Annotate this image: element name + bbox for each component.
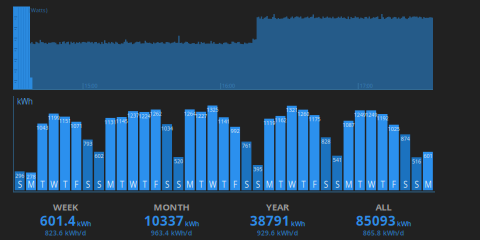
staticText: 1151 (59, 117, 71, 124)
staticText: F (312, 179, 316, 190)
staticText: 865.8 kWh/d (363, 229, 404, 237)
staticText: S (403, 179, 407, 190)
staticText: kWh (77, 219, 91, 228)
staticText: M (27, 179, 34, 190)
staticText: 1131 (104, 119, 116, 126)
staticText: 992 (231, 127, 240, 135)
staticText: 1087 (342, 121, 354, 128)
staticText: 1237 (127, 112, 139, 119)
staticText: M (107, 179, 114, 190)
staticText: F (233, 179, 237, 190)
staticText: 601 (423, 152, 432, 160)
staticText: 1325 (206, 106, 218, 113)
staticText: T (40, 179, 44, 190)
staticText: T (222, 179, 226, 190)
staticText: S (414, 179, 418, 190)
staticText: YEAR (266, 201, 289, 213)
staticText: kWh (397, 219, 411, 228)
staticText: M (424, 179, 431, 190)
staticText: 823.6 kWh/d (45, 229, 86, 237)
staticText: 1175 (308, 116, 320, 123)
staticText: F (154, 179, 158, 190)
staticText: 1249 (354, 111, 366, 118)
staticText: T (199, 179, 203, 190)
staticText: 1141 (218, 118, 230, 125)
staticText: S (18, 179, 22, 190)
button[interactable]: MONTH (118, 199, 224, 239)
staticText: S (176, 179, 180, 190)
staticText: 874 (401, 135, 410, 142)
staticText: 296 (15, 172, 24, 179)
staticText: M (345, 179, 352, 190)
staticText: 1227 (195, 112, 207, 119)
staticText: S (86, 179, 90, 190)
staticText: 963.4 kWh/d (151, 229, 192, 237)
staticText: 601.4 (40, 212, 76, 229)
staticText: 1043 (36, 124, 48, 131)
staticText: 828 (321, 138, 330, 145)
staticText: T (301, 179, 305, 190)
staticText: M (266, 179, 273, 190)
staticText: W (50, 179, 57, 190)
button[interactable]: YEAR (224, 199, 330, 239)
staticText: 1145 (116, 118, 128, 125)
staticText: S (335, 179, 339, 190)
staticText: 395 (253, 166, 262, 173)
staticText: 1264 (184, 110, 196, 117)
staticText: 17:00 (360, 82, 373, 89)
staticText: F (392, 179, 396, 190)
staticText: 1260 (297, 110, 309, 117)
staticText: 929.6 kWh/d (257, 229, 298, 237)
staticText: 516 (412, 158, 421, 165)
staticText: S (97, 179, 101, 190)
staticText: 278 (26, 173, 35, 180)
staticText: ALL (375, 201, 391, 213)
staticText: T (142, 179, 146, 190)
staticText: 1192 (376, 115, 388, 122)
staticText: 1224 (138, 113, 150, 120)
staticText: (Watts) (29, 7, 48, 14)
staticText: S (256, 179, 260, 190)
staticText: W (209, 179, 216, 190)
staticText: kWh (17, 96, 33, 107)
staticText: 520 (174, 158, 183, 165)
staticText: W (129, 179, 136, 190)
staticText: kWh (185, 219, 199, 228)
staticText: 85093 (356, 212, 396, 229)
staticText: 1119 (263, 119, 275, 126)
staticText: 1262 (150, 110, 162, 117)
button[interactable]: ALL (330, 199, 436, 239)
staticText: 761 (242, 142, 251, 149)
staticText: 602 (94, 152, 103, 159)
staticText: W (368, 179, 375, 190)
staticText: F (74, 179, 78, 190)
staticText: 15:00 (84, 82, 97, 89)
staticText: T (63, 179, 67, 190)
staticText: 793 (83, 140, 92, 147)
staticText: T (120, 179, 124, 190)
staticText: T (358, 179, 362, 190)
button[interactable]: WEEK (12, 199, 118, 239)
staticText: 1321 (286, 106, 298, 113)
staticText: M (186, 179, 193, 190)
staticText: 1249 (365, 111, 377, 118)
staticText: 1199 (48, 114, 60, 121)
staticText: W (288, 179, 295, 190)
staticText: T (278, 179, 282, 190)
staticText: MONTH (153, 201, 189, 213)
staticText: 10337 (144, 212, 184, 229)
staticText: T (380, 179, 384, 190)
staticText: WEEK (53, 201, 78, 213)
staticText: 1071 (70, 122, 82, 129)
staticText: 16:00 (222, 82, 235, 89)
staticText: S (244, 179, 248, 190)
staticText: S (165, 179, 169, 190)
staticText: 1162 (274, 117, 286, 124)
staticText: S (324, 179, 328, 190)
staticText: 38791 (250, 212, 290, 229)
staticText: 541 (333, 156, 342, 163)
staticText: 1025 (388, 125, 400, 132)
staticText: kWh (291, 219, 305, 228)
staticText: 1034 (161, 125, 173, 132)
